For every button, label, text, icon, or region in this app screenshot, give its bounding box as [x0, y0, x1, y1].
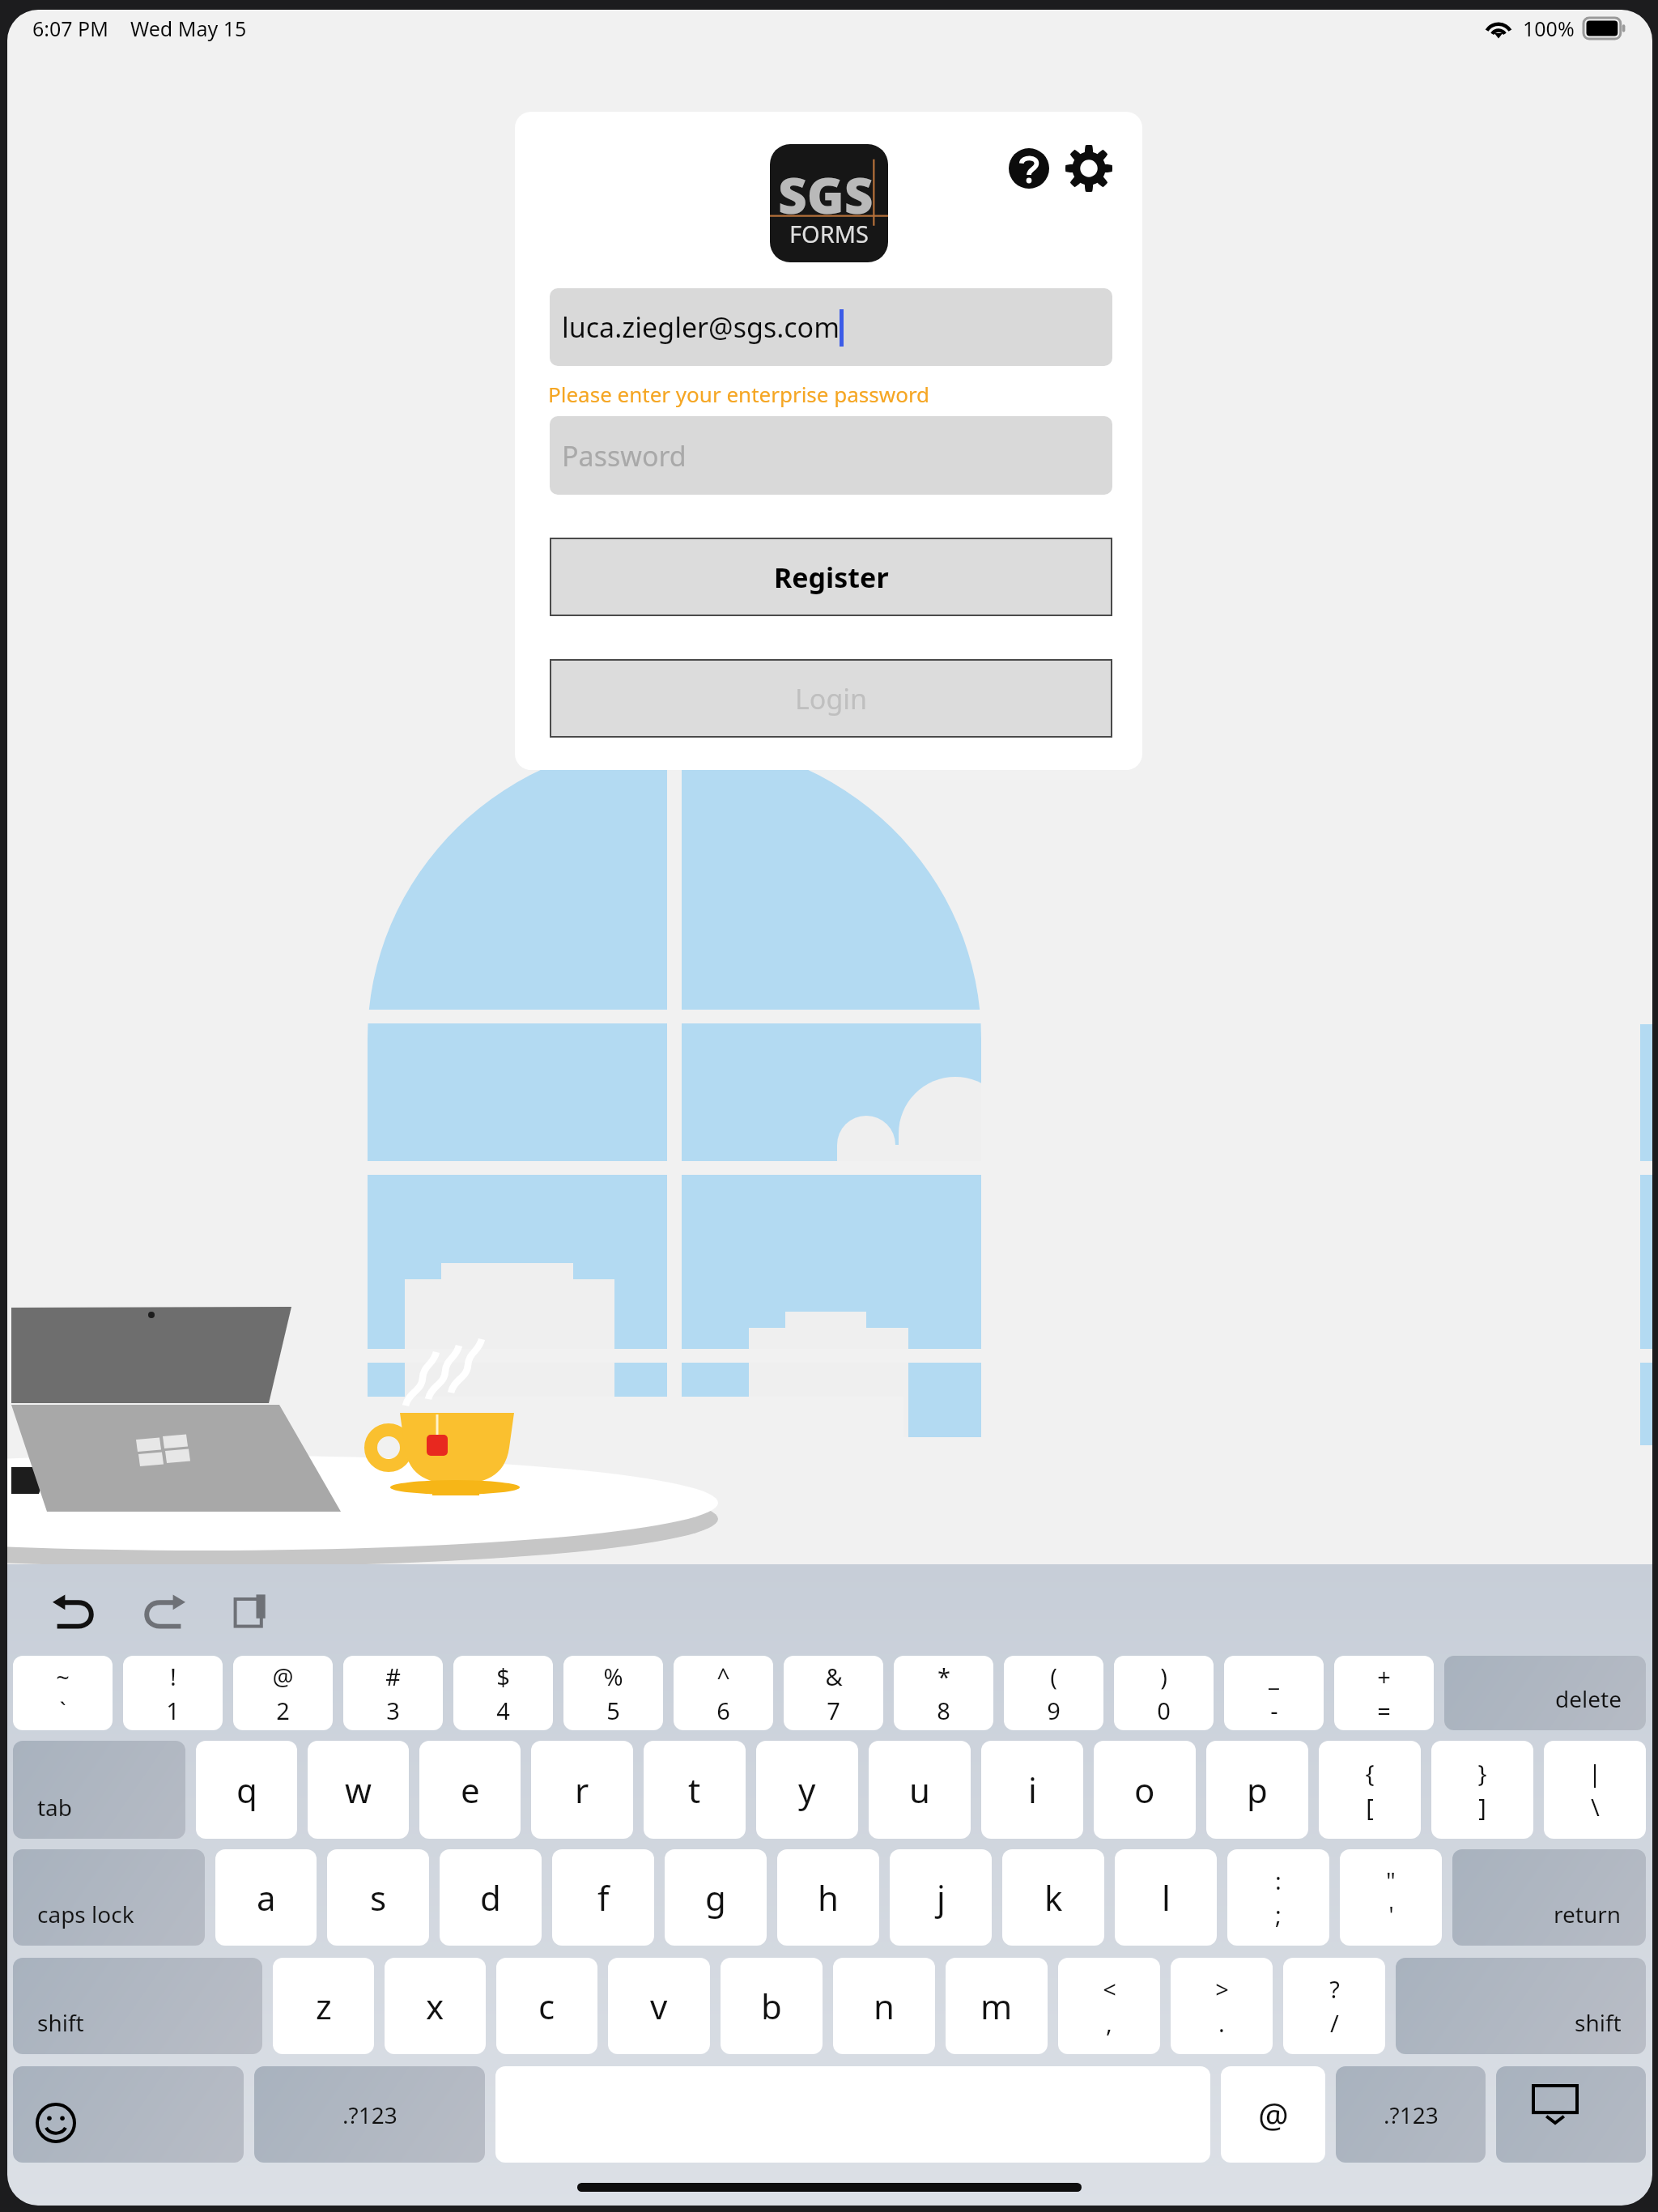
staticText: 0 [1157, 1695, 1171, 1726]
button[interactable]: luca.ziegler@sgs.com [550, 288, 1112, 366]
staticText: $ [496, 1661, 510, 1692]
button[interactable]: < [1058, 1958, 1160, 2054]
staticText: 4 [496, 1695, 510, 1726]
button[interactable]: ( [1004, 1656, 1103, 1730]
staticText: ? [1329, 1973, 1340, 2005]
button[interactable]: caps lock [13, 1849, 205, 1946]
button[interactable]: > [1171, 1958, 1273, 2054]
button[interactable]: h [777, 1849, 879, 1946]
button[interactable]: o [1094, 1741, 1196, 1839]
staticText: v [650, 1983, 668, 2029]
button[interactable]: j [890, 1849, 992, 1946]
button[interactable]: | [1544, 1741, 1646, 1839]
button[interactable]: { [1319, 1741, 1421, 1839]
staticText: z [316, 1983, 332, 2029]
button[interactable]: c [496, 1958, 597, 2054]
button[interactable]: @ [233, 1656, 333, 1730]
button[interactable]: a [215, 1849, 317, 1946]
button[interactable]: Login [550, 659, 1112, 738]
button[interactable]: ~ [13, 1656, 113, 1730]
button[interactable]: ^ [674, 1656, 773, 1730]
button[interactable]: t [644, 1741, 746, 1839]
button[interactable]: Paste [225, 1582, 282, 1639]
button[interactable]: w [308, 1741, 409, 1839]
staticText: 7 [827, 1695, 840, 1726]
button[interactable]: b [721, 1958, 823, 2054]
staticText: w [345, 1767, 372, 1813]
button[interactable]: return [1452, 1849, 1646, 1946]
button[interactable]: s [327, 1849, 429, 1946]
button[interactable]: z [273, 1958, 374, 2054]
button[interactable]: x [385, 1958, 486, 2054]
staticText: < [1103, 1973, 1116, 2005]
staticText: ( [1050, 1661, 1057, 1692]
button[interactable]: Redo [134, 1582, 191, 1639]
staticText: ~ [56, 1661, 70, 1692]
button[interactable]: .?123 [1336, 2066, 1486, 2163]
button[interactable]: + [1334, 1656, 1434, 1730]
button[interactable]: Settings [1065, 144, 1113, 193]
button[interactable]: & [784, 1656, 883, 1730]
staticText: - [1270, 1695, 1278, 1726]
staticText: & [825, 1661, 843, 1692]
button[interactable]: u [869, 1741, 971, 1839]
button[interactable]: * [894, 1656, 993, 1730]
staticText: .?123 [1384, 2099, 1439, 2130]
button[interactable]: y [756, 1741, 858, 1839]
button[interactable]: ) [1114, 1656, 1214, 1730]
button[interactable]: % [563, 1656, 663, 1730]
staticText: % [603, 1661, 623, 1692]
button[interactable]: " [1340, 1849, 1442, 1946]
staticText: + [1377, 1661, 1391, 1692]
button[interactable]: n [833, 1958, 935, 2054]
button[interactable]: : [1227, 1849, 1329, 1946]
button[interactable]: tab [13, 1741, 185, 1839]
button[interactable]: d [440, 1849, 542, 1946]
staticText: ] [1478, 1791, 1486, 1823]
button[interactable]: delete [1444, 1656, 1646, 1730]
button[interactable]: Register [550, 538, 1112, 616]
staticText: | [1588, 1757, 1601, 1789]
button[interactable]: r [531, 1741, 633, 1839]
button[interactable]: # [343, 1656, 443, 1730]
button[interactable] [495, 2066, 1210, 2163]
button[interactable]: Help [1006, 146, 1052, 191]
staticText: 5 [606, 1695, 620, 1726]
button[interactable]: Undo [47, 1582, 104, 1639]
button[interactable]: e [419, 1741, 521, 1839]
button[interactable]: .?123 [254, 2066, 485, 2163]
button[interactable]: p [1206, 1741, 1308, 1839]
button[interactable]: g [665, 1849, 767, 1946]
staticText: Register [774, 559, 889, 596]
staticText: : [1275, 1865, 1282, 1896]
button[interactable]: ? [1283, 1958, 1385, 2054]
button[interactable]: ! [123, 1656, 223, 1730]
button[interactable]: l [1115, 1849, 1217, 1946]
button[interactable]: k [1002, 1849, 1104, 1946]
staticText: i [1028, 1767, 1037, 1813]
button[interactable]: i [981, 1741, 1083, 1839]
button[interactable] [1496, 2066, 1646, 2163]
button[interactable]: shift [13, 1958, 262, 2054]
staticText: b [761, 1983, 782, 2029]
staticText: r [575, 1767, 589, 1813]
button[interactable]: @ [1221, 2066, 1325, 2163]
button[interactable]: shift [1396, 1958, 1646, 2054]
button[interactable]: _ [1224, 1656, 1324, 1730]
staticText: Login [795, 680, 868, 717]
staticText: { [1365, 1757, 1375, 1789]
staticText: f [597, 1874, 610, 1921]
staticText: c [538, 1983, 555, 2029]
staticText: return [1554, 1899, 1622, 1929]
button[interactable]: $ [453, 1656, 553, 1730]
button[interactable]: v [608, 1958, 710, 2054]
button[interactable]: Password [550, 416, 1112, 495]
button[interactable]: } [1431, 1741, 1533, 1839]
button[interactable]: q [196, 1741, 297, 1839]
button[interactable]: f [552, 1849, 654, 1946]
button[interactable] [13, 2066, 244, 2163]
button[interactable]: m [946, 1958, 1048, 2054]
staticText: 1 [166, 1695, 180, 1726]
staticText: ! [170, 1661, 176, 1692]
staticText: . [1218, 2007, 1225, 2039]
